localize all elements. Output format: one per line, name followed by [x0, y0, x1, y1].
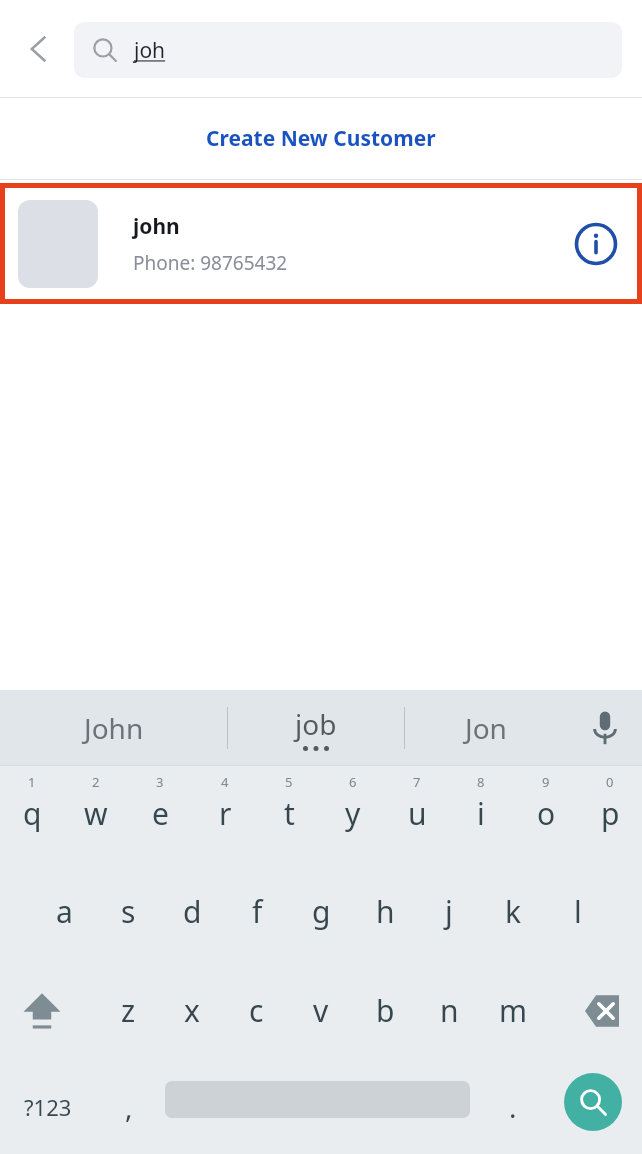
staticText: f	[252, 891, 263, 932]
button[interactable]: 9	[514, 766, 578, 862]
staticText: 5	[285, 773, 293, 791]
staticText: 2	[92, 773, 100, 791]
button[interactable]: b	[353, 961, 417, 1060]
button[interactable]: 3	[128, 766, 192, 862]
button[interactable]: l	[546, 862, 610, 961]
staticText: joh	[134, 36, 166, 65]
staticText: Create New Customer	[206, 124, 436, 153]
button[interactable]: Backspace	[568, 961, 632, 1060]
button[interactable]: john	[18, 180, 624, 308]
button[interactable]: k	[481, 862, 545, 961]
button[interactable]: Voice input	[567, 690, 642, 765]
button[interactable]: n	[417, 961, 481, 1060]
staticText: n	[440, 990, 459, 1031]
staticText: c	[249, 990, 264, 1031]
staticText: y	[345, 793, 361, 834]
button[interactable]: .	[482, 1060, 544, 1154]
staticText: v	[313, 990, 329, 1031]
button[interactable]: Jon	[405, 690, 567, 765]
button[interactable]: s	[96, 862, 160, 961]
staticText: r	[219, 793, 232, 834]
staticText: p	[601, 793, 620, 834]
button[interactable]: 6	[321, 766, 385, 862]
button[interactable]: 5	[257, 766, 321, 862]
button[interactable]: z	[96, 961, 160, 1060]
staticText: john	[133, 212, 180, 241]
button[interactable]: 8	[449, 766, 513, 862]
staticText: w	[84, 793, 108, 834]
button[interactable]: 4	[193, 766, 257, 862]
staticText: l	[574, 891, 582, 932]
button[interactable]: j	[417, 862, 481, 961]
button[interactable]: x	[160, 961, 224, 1060]
button[interactable]: joh	[74, 22, 622, 78]
staticText: k	[505, 891, 522, 932]
staticText: o	[537, 793, 556, 834]
staticText: 9	[542, 773, 550, 791]
button[interactable]: h	[353, 862, 417, 961]
staticText: s	[121, 891, 136, 932]
button[interactable]: John	[0, 690, 227, 765]
button[interactable]: ?123	[8, 1060, 88, 1154]
staticText: job	[295, 705, 337, 743]
button[interactable]: Back	[10, 20, 68, 78]
staticText: 0	[606, 773, 614, 791]
staticText: 1	[28, 773, 36, 791]
staticText: g	[312, 891, 331, 932]
staticText: h	[376, 891, 395, 932]
button[interactable]: ,	[98, 1060, 160, 1154]
staticText: 7	[413, 773, 421, 791]
staticText: b	[376, 990, 395, 1031]
staticText: Phone: 98765432	[133, 250, 288, 276]
button[interactable]: c	[224, 961, 288, 1060]
button[interactable]: 0	[578, 766, 642, 862]
staticText: ,	[125, 1088, 133, 1126]
button[interactable]: f	[225, 862, 289, 961]
staticText: John	[84, 709, 144, 747]
staticText: x	[184, 990, 200, 1031]
staticText: ?123	[24, 1092, 72, 1122]
staticText: m	[499, 990, 528, 1031]
staticText: e	[152, 793, 169, 834]
staticText: j	[445, 891, 453, 932]
staticText: i	[477, 793, 485, 834]
button[interactable]: m	[481, 961, 545, 1060]
staticText: q	[23, 793, 42, 834]
button[interactable]: g	[289, 862, 353, 961]
button[interactable]: Shift	[10, 961, 74, 1060]
button[interactable]: 7	[385, 766, 449, 862]
staticText: 4	[221, 773, 229, 791]
staticText: 8	[477, 773, 485, 791]
staticText: t	[284, 793, 295, 834]
staticText: d	[183, 891, 202, 932]
button[interactable]: 1	[0, 766, 64, 862]
button[interactable]: v	[289, 961, 353, 1060]
staticText: 6	[349, 773, 357, 791]
staticText: a	[56, 891, 73, 932]
button[interactable]: Create New Customer	[0, 98, 642, 179]
button[interactable]: Info	[568, 216, 624, 272]
staticText: 3	[156, 773, 164, 791]
staticText: u	[408, 793, 427, 834]
button[interactable]: a	[32, 862, 96, 961]
staticText: z	[121, 990, 136, 1031]
staticText: .	[509, 1088, 517, 1126]
button[interactable]: d	[160, 862, 224, 961]
button[interactable]: job	[228, 690, 404, 765]
button[interactable]: Search	[564, 1073, 622, 1131]
button[interactable]: 2	[64, 766, 128, 862]
staticText: Jon	[465, 709, 507, 747]
